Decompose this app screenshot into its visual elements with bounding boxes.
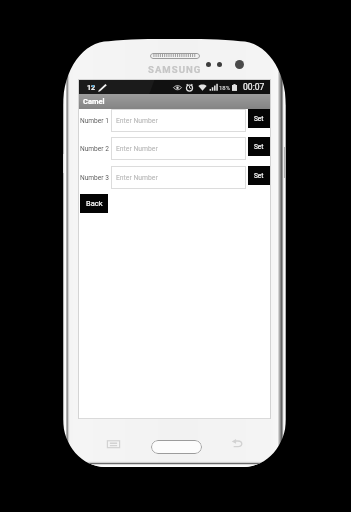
button[interactable]: Home [151, 440, 202, 454]
button[interactable]: Back [80, 194, 108, 213]
button[interactable]: Set [248, 109, 270, 128]
staticText: Enter Number [116, 117, 158, 125]
button[interactable]: Back [231, 437, 243, 450]
staticText: 12 [87, 83, 96, 91]
button[interactable]: Set [248, 137, 270, 156]
button[interactable]: Enter Number [111, 109, 246, 132]
button[interactable]: Enter Number [111, 166, 246, 189]
staticText: Set [254, 115, 264, 123]
staticText: Set [254, 172, 264, 180]
staticText: 00:07 [243, 82, 265, 92]
staticText: Number 2 [80, 145, 109, 153]
staticText: Number 1 [80, 117, 109, 125]
staticText: SAMSUNG [148, 64, 202, 75]
staticText: Enter Number [116, 145, 158, 153]
staticText: Back [86, 199, 103, 208]
staticText: Set [254, 143, 264, 151]
staticText: Enter Number [116, 174, 158, 182]
button[interactable]: Enter Number [111, 137, 246, 160]
button[interactable]: Menu [107, 437, 120, 450]
button[interactable]: Set [248, 166, 270, 185]
staticText: Camel [83, 97, 105, 106]
staticText: Number 3 [80, 174, 109, 182]
staticText: 18% [219, 84, 231, 91]
